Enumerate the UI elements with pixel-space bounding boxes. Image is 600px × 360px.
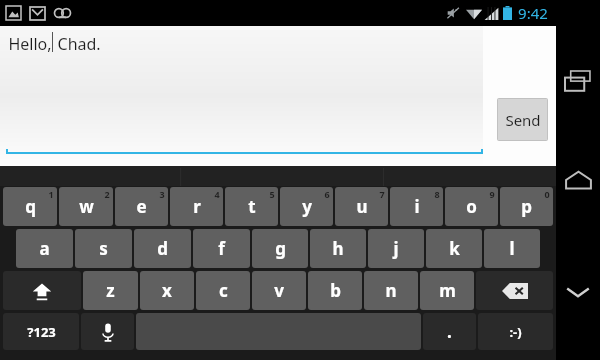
staticText: w (79, 195, 94, 218)
staticText: 2 (104, 188, 110, 200)
button[interactable]: e (115, 187, 168, 226)
staticText: 7 (379, 188, 385, 200)
staticText: 8 (434, 188, 440, 200)
button[interactable]: h (310, 229, 366, 268)
staticText: k (449, 237, 460, 260)
button[interactable]: p (500, 187, 553, 226)
button[interactable]: Recents (556, 60, 600, 104)
staticText: p (521, 195, 532, 218)
staticText: 4 (214, 188, 220, 200)
button[interactable]: x (140, 271, 194, 310)
staticText: 0 (544, 188, 550, 200)
button[interactable]: m (420, 271, 474, 310)
staticText: c (219, 279, 228, 302)
staticText: m (439, 279, 456, 302)
button[interactable]: n (364, 271, 418, 310)
staticText: q (25, 195, 36, 218)
button[interactable]: mic (81, 313, 134, 350)
staticText: . (447, 320, 452, 343)
button[interactable]: del (476, 271, 553, 310)
button[interactable]: :-) (478, 313, 553, 350)
staticText: l (509, 237, 515, 260)
staticText: f (218, 237, 225, 260)
staticText: a (39, 237, 50, 260)
staticText: 5 (269, 188, 275, 200)
staticText: Send (505, 110, 541, 130)
staticText: e (136, 195, 147, 218)
button[interactable]: Send (497, 98, 548, 141)
staticText: j (393, 237, 399, 260)
button[interactable]: . (423, 313, 476, 350)
button[interactable]: t (225, 187, 278, 226)
button[interactable]: z (83, 271, 138, 310)
staticText: 6 (324, 188, 330, 200)
staticText: r (193, 195, 201, 218)
staticText: b (330, 279, 341, 302)
staticText: t (248, 195, 256, 218)
staticText: i (414, 195, 420, 218)
staticText: 1 (48, 188, 54, 200)
button[interactable]: l (484, 229, 540, 268)
button[interactable]: d (134, 229, 191, 268)
button[interactable]: s (75, 229, 132, 268)
staticText: Hello, (8, 33, 52, 55)
button[interactable]: Home (556, 158, 600, 202)
button[interactable]: k (426, 229, 482, 268)
button[interactable]: ?123 (3, 313, 79, 350)
staticText: v (274, 279, 284, 302)
staticText: 9:42 (518, 3, 548, 23)
button[interactable]: a (16, 229, 73, 268)
staticText: :-) (509, 323, 522, 341)
button[interactable]: r (170, 187, 223, 226)
staticText: g (275, 237, 286, 260)
staticText: ?123 (27, 323, 56, 341)
button[interactable]: y (280, 187, 333, 226)
button[interactable]: i (390, 187, 443, 226)
button[interactable]: shift (3, 271, 81, 310)
button[interactable]: q (3, 187, 57, 226)
staticText: Chad. (53, 33, 101, 55)
staticText: d (157, 237, 168, 260)
button[interactable]: u (335, 187, 388, 226)
staticText: x (162, 279, 172, 302)
button[interactable]: o (445, 187, 498, 226)
staticText: o (466, 195, 477, 218)
button[interactable]: v (252, 271, 306, 310)
button[interactable]: w (59, 187, 113, 226)
staticText: h (332, 237, 344, 260)
button[interactable]: Back (556, 270, 600, 314)
staticText: u (356, 195, 368, 218)
button[interactable]: g (252, 229, 308, 268)
staticText: s (99, 237, 108, 260)
staticText: z (106, 279, 115, 302)
staticText: y (302, 195, 312, 218)
staticText: n (385, 279, 397, 302)
staticText: 3 (159, 188, 165, 200)
button[interactable]: j (368, 229, 424, 268)
button[interactable]: f (193, 229, 250, 268)
staticText: 9 (489, 188, 495, 200)
button[interactable]: b (308, 271, 362, 310)
button[interactable]: c (196, 271, 250, 310)
